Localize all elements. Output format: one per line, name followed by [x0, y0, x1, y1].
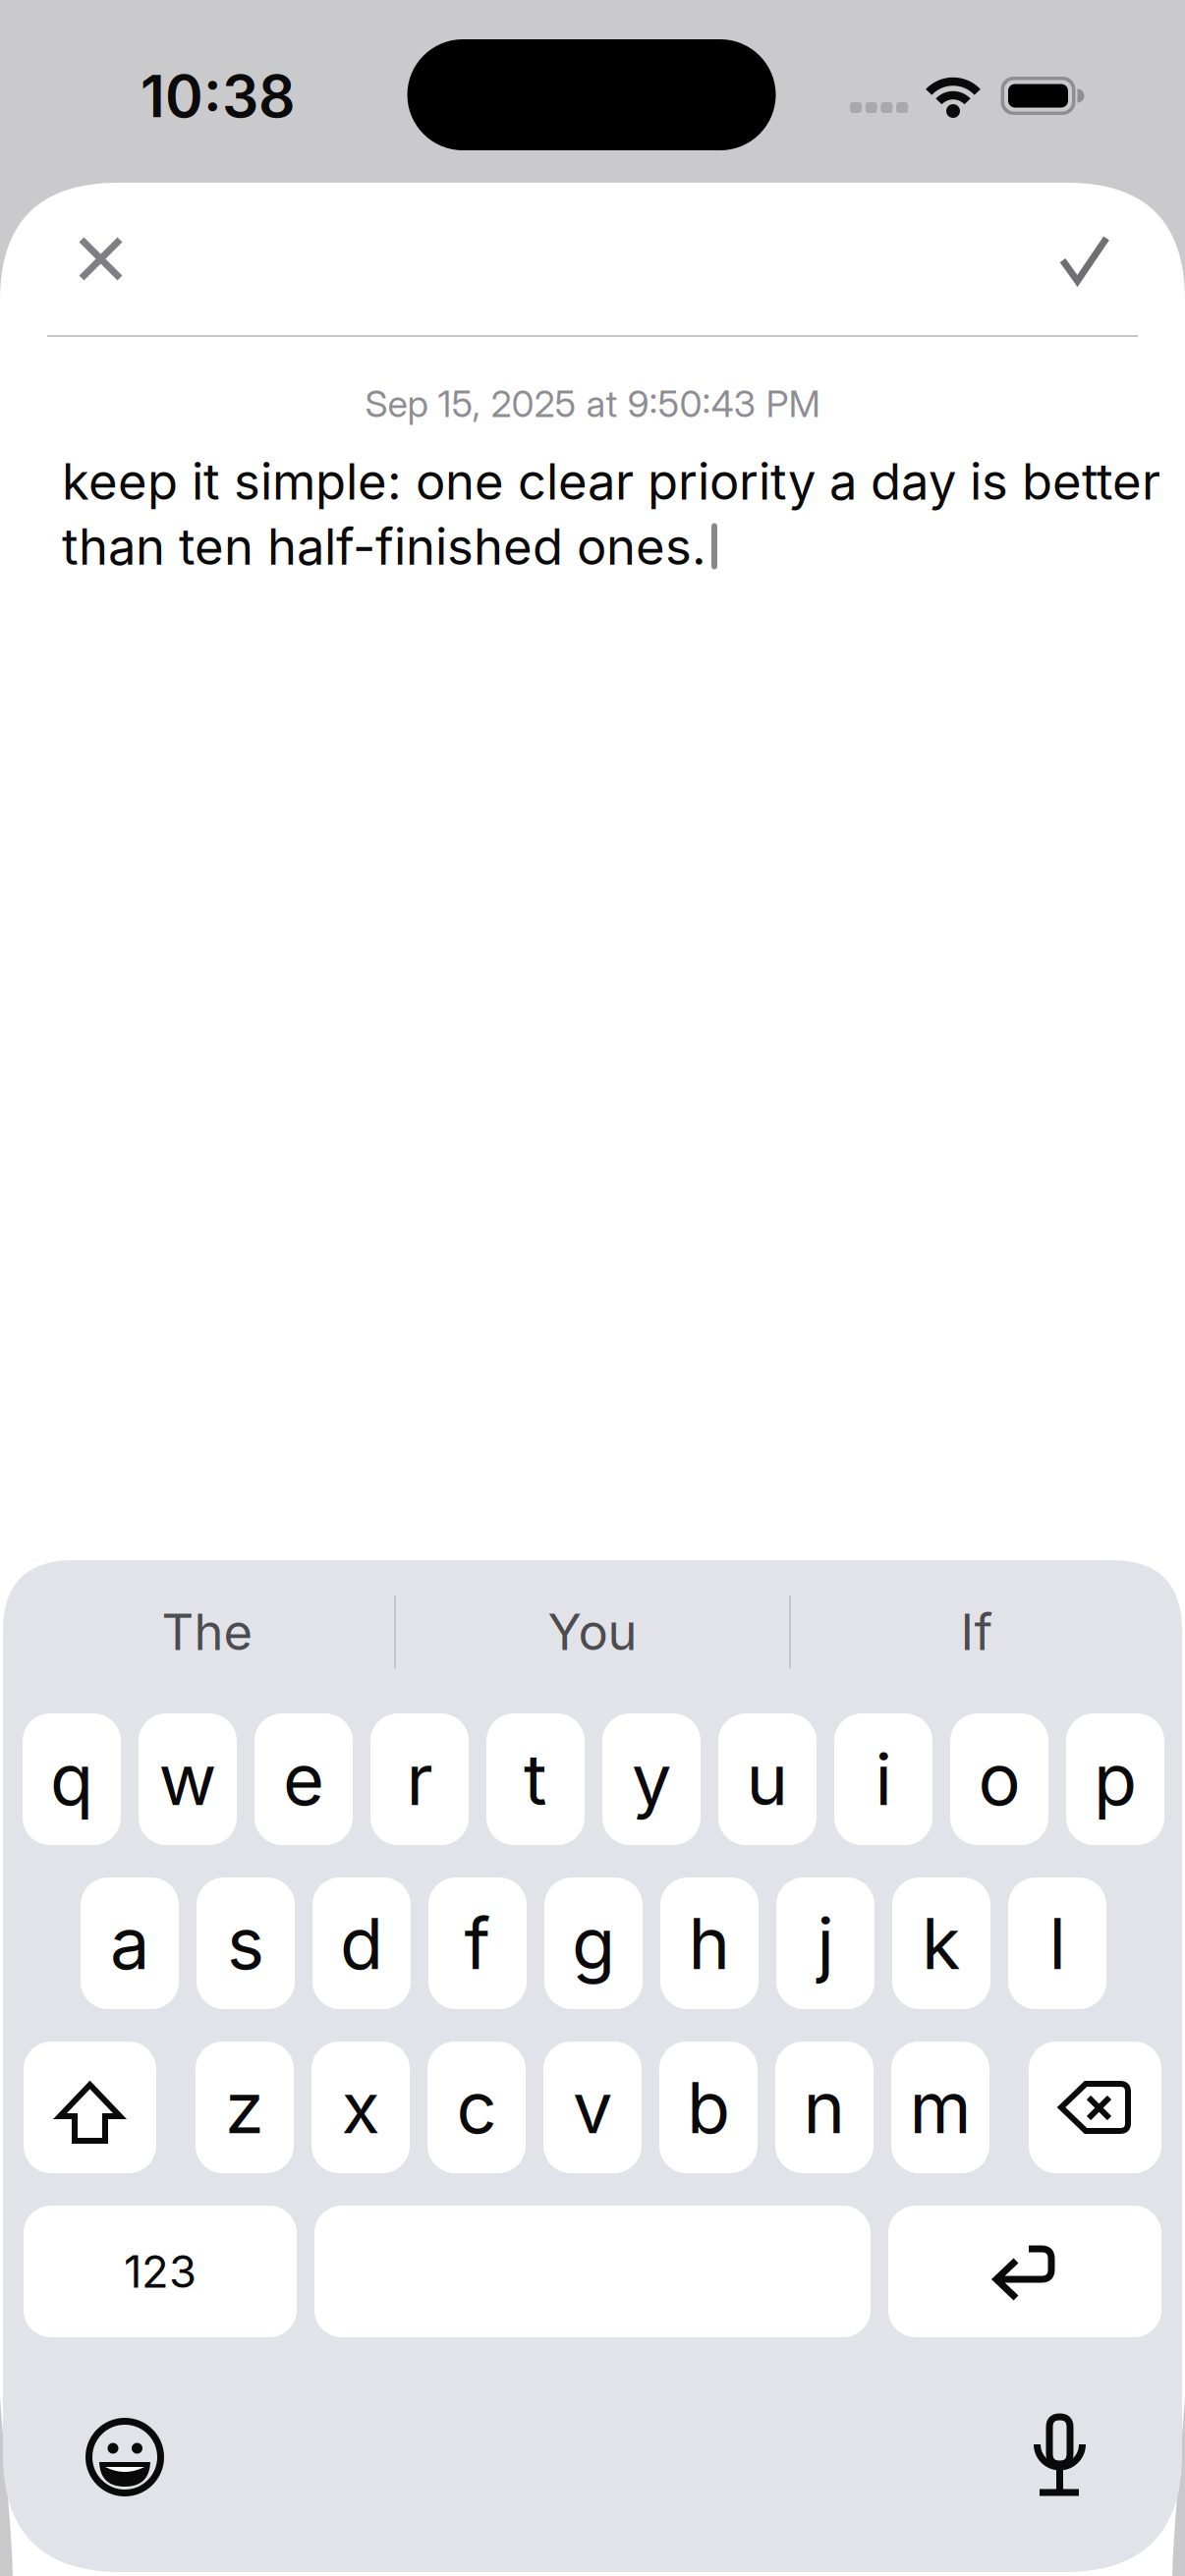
- button[interactable]: s: [197, 1877, 295, 2009]
- button[interactable]: q: [23, 1713, 121, 1845]
- staticText: keep it simple: one clear priority a day…: [62, 449, 1160, 579]
- staticText: d: [340, 1900, 383, 1986]
- staticText: f: [464, 1900, 491, 1986]
- staticText: 123: [124, 2245, 197, 2298]
- staticText: The: [162, 1602, 253, 1662]
- staticText: w: [159, 1736, 217, 1822]
- button[interactable]: k: [892, 1877, 990, 2009]
- button[interactable]: c: [427, 2042, 526, 2173]
- button[interactable]: 123: [24, 2206, 297, 2337]
- button[interactable]: w: [139, 1713, 237, 1845]
- button[interactable]: o: [950, 1713, 1048, 1845]
- staticText: z: [225, 2065, 264, 2150]
- button[interactable]: j: [776, 1877, 875, 2009]
- staticText: You: [548, 1602, 637, 1662]
- button[interactable]: delete: [0, 0, 1185, 2576]
- staticText: m: [909, 2065, 971, 2150]
- button[interactable]: z: [196, 2042, 294, 2173]
- button[interactable]: t: [486, 1713, 585, 1845]
- staticText: k: [922, 1900, 961, 1986]
- staticText: b: [687, 2065, 730, 2150]
- button[interactable]: e: [254, 1713, 353, 1845]
- staticText: a: [110, 1900, 149, 1986]
- staticText: Sep 15, 2025 at 9:50:43 PM: [365, 382, 820, 426]
- button[interactable]: Save: [0, 0, 1185, 2576]
- button[interactable]: If: [790, 1578, 1163, 1686]
- button[interactable]: return: [0, 0, 1185, 2576]
- button[interactable]: u: [718, 1713, 817, 1845]
- staticText: h: [688, 1900, 731, 1986]
- button[interactable]: l: [1008, 1877, 1106, 2009]
- button[interactable]: a: [81, 1877, 179, 2009]
- staticText: r: [406, 1736, 433, 1822]
- staticText: q: [50, 1736, 93, 1822]
- staticText: i: [875, 1736, 892, 1822]
- staticText: s: [227, 1900, 264, 1986]
- staticText: g: [572, 1900, 615, 1986]
- button[interactable]: y: [602, 1713, 701, 1845]
- button[interactable]: m: [891, 2042, 989, 2173]
- button[interactable]: Dictation: [0, 0, 1185, 2576]
- button[interactable]: d: [312, 1877, 411, 2009]
- staticText: p: [1094, 1736, 1137, 1822]
- staticText: t: [524, 1736, 547, 1822]
- staticText: l: [1049, 1900, 1066, 1986]
- button[interactable]: g: [544, 1877, 643, 2009]
- button[interactable]: Close: [0, 0, 1185, 2576]
- staticText: v: [573, 2065, 612, 2150]
- staticText: e: [283, 1736, 324, 1822]
- button[interactable]: f: [428, 1877, 527, 2009]
- button[interactable]: r: [370, 1713, 469, 1845]
- staticText: x: [341, 2065, 380, 2150]
- staticText: c: [456, 2065, 497, 2150]
- staticText: 10:38: [141, 61, 296, 131]
- button[interactable]: Emoji: [0, 0, 1185, 2576]
- button[interactable]: You: [406, 1578, 779, 1686]
- button[interactable]: x: [311, 2042, 410, 2173]
- button[interactable]: v: [543, 2042, 642, 2173]
- staticText: u: [746, 1736, 789, 1822]
- button[interactable]: b: [659, 2042, 758, 2173]
- button[interactable]: The: [21, 1578, 394, 1686]
- staticText: y: [632, 1736, 671, 1822]
- button[interactable]: i: [834, 1713, 932, 1845]
- staticText: o: [978, 1736, 1020, 1822]
- button[interactable]: n: [775, 2042, 874, 2173]
- staticText: j: [817, 1900, 834, 1986]
- button[interactable]: shift: [0, 0, 1185, 2576]
- button[interactable]: h: [660, 1877, 759, 2009]
- staticText: If: [960, 1602, 993, 1662]
- button[interactable]: p: [1066, 1713, 1164, 1845]
- staticText: n: [803, 2065, 846, 2150]
